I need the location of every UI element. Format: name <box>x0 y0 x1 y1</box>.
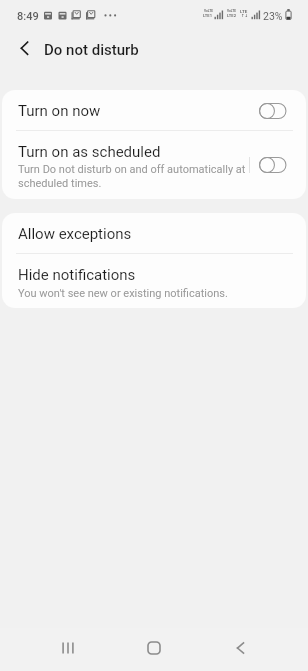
staticText: 8:49 <box>17 10 39 23</box>
button[interactable]: Allow exceptions <box>2 213 306 253</box>
button[interactable]: Turn on now <box>2 90 306 130</box>
staticText: Do not disturb <box>44 41 139 59</box>
staticText: VoLTE <box>204 9 213 13</box>
button[interactable]: Turn on as scheduled <box>2 131 306 199</box>
button[interactable]: Recent apps <box>40 627 96 671</box>
button[interactable]: Toggle <box>259 102 288 120</box>
staticText: LTE1 <box>203 13 212 18</box>
staticText: Allow exceptions <box>18 225 132 243</box>
staticText: Hide notifications <box>18 266 136 284</box>
button[interactable]: Back <box>212 627 268 671</box>
staticText: 23% <box>263 10 283 22</box>
staticText: ↑↓ <box>241 13 249 18</box>
staticText: LTE <box>240 9 248 14</box>
button[interactable]: Navigate up <box>6 30 42 66</box>
staticText: Turn on now <box>18 102 101 120</box>
button[interactable]: Toggle <box>259 156 288 174</box>
button[interactable]: Hide notifications <box>2 254 306 308</box>
staticText: VoLTE <box>227 9 236 13</box>
staticText: You won't see new or existing notificati… <box>18 287 228 300</box>
staticText: Turn on as scheduled <box>18 143 161 161</box>
staticText: Turn Do not disturb on and off automatic… <box>18 163 246 190</box>
button[interactable]: Home <box>126 627 182 671</box>
staticText: LTE2 <box>227 13 236 18</box>
